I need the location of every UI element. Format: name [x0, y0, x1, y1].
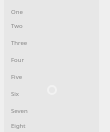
staticText: Three: [11, 39, 28, 47]
staticText: Four: [11, 56, 24, 64]
button[interactable]: Five: [0, 68, 110, 85]
staticText: One: [11, 8, 23, 16]
button[interactable]: Six: [0, 85, 110, 102]
staticText: Eight: [11, 122, 26, 130]
button[interactable]: Four: [0, 51, 110, 68]
staticText: Six: [11, 90, 20, 98]
staticText: Two: [11, 22, 23, 30]
staticText: Seven: [11, 107, 28, 115]
other: Loading indicator: [47, 85, 57, 95]
button[interactable]: Two: [0, 17, 110, 34]
button[interactable]: Seven: [0, 102, 110, 119]
button[interactable]: One: [0, 6, 110, 17]
button[interactable]: Eight: [0, 119, 110, 132]
staticText: Five: [11, 73, 23, 81]
button[interactable]: Three: [0, 34, 110, 51]
